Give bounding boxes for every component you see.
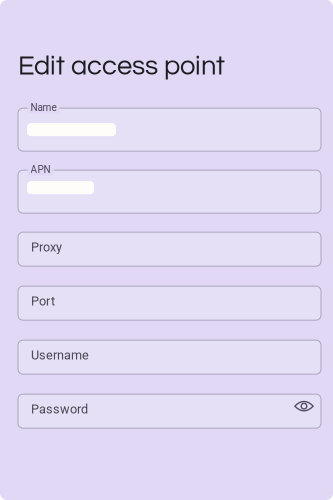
staticText: Name — [30, 102, 56, 113]
staticText: Edit access point — [18, 52, 225, 80]
staticText: Password — [31, 402, 88, 416]
button[interactable]: Proxy — [0, 232, 333, 266]
button[interactable]: Password — [0, 394, 333, 428]
button[interactable]: APN — [0, 170, 333, 213]
staticText: Port — [31, 294, 55, 308]
button[interactable]: Username — [0, 340, 333, 374]
button[interactable]: Name — [0, 108, 333, 151]
staticText: Username — [31, 348, 89, 362]
button[interactable]: Port — [0, 286, 333, 320]
staticText: Proxy — [31, 240, 62, 254]
staticText: APN — [30, 164, 50, 175]
